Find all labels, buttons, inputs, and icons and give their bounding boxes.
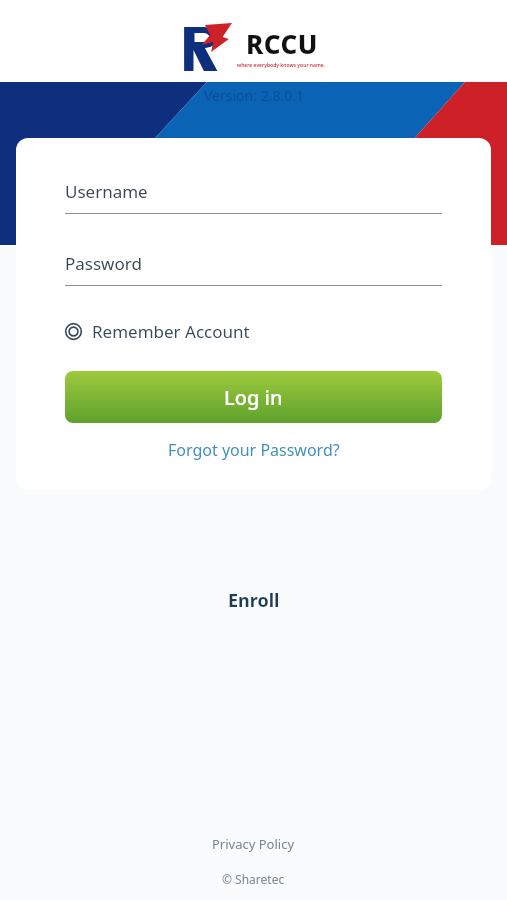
staticText: where everybody knows your name. <box>237 62 326 69</box>
button[interactable]: Log in <box>65 371 442 423</box>
button[interactable]: Username <box>65 180 442 214</box>
staticText: 9:20 AM <box>225 4 283 24</box>
staticText: Remember Account <box>92 320 250 343</box>
staticText: Version: 2.8.0.1 <box>204 86 304 105</box>
button[interactable]: Enroll <box>202 580 306 621</box>
staticText: © Sharetec <box>222 871 285 887</box>
staticText: Enroll <box>228 588 280 613</box>
staticText: RCCU <box>246 26 318 61</box>
staticText: Forgot your Password? <box>168 439 340 461</box>
staticText: Log in <box>224 384 283 411</box>
staticText: Username <box>65 180 148 203</box>
staticText: Privacy Policy <box>212 835 295 853</box>
staticText: Password <box>65 252 142 275</box>
button[interactable]: Forgot your Password? <box>156 433 352 467</box>
button[interactable]: Privacy Policy <box>196 832 311 856</box>
button[interactable]: Remember Account <box>65 314 250 349</box>
button[interactable]: Password <box>65 252 442 286</box>
